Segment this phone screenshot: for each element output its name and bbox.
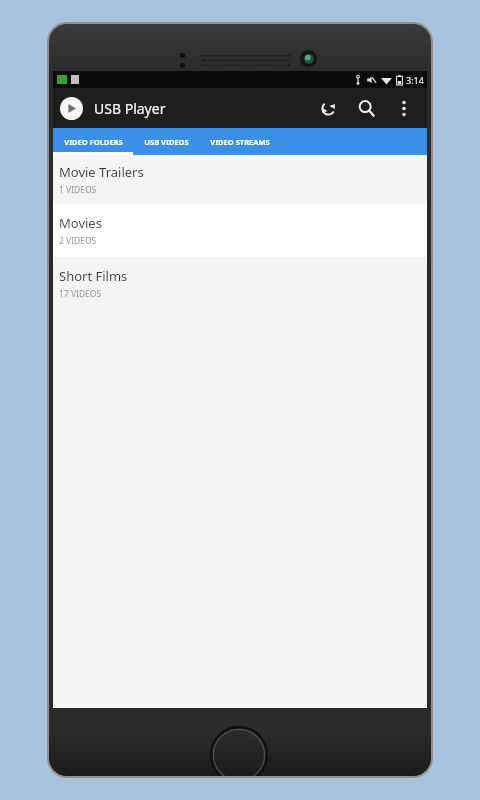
staticText: Short Films [59,267,128,285]
button[interactable]: Movie Trailers [53,155,427,204]
staticText: Movie Trailers [59,163,144,181]
button[interactable]: Refresh [309,88,347,128]
staticText: 3:14 [406,74,424,86]
staticText: USB VIDEOS [144,137,189,147]
button[interactable]: Movies [53,204,427,257]
staticText: VIDEO STREAMS [210,137,270,147]
staticText: 2 VIDEOS [59,235,97,247]
staticText: 17 VIDEOS [59,288,102,300]
button[interactable]: VIDEO FOLDERS [53,128,133,155]
button[interactable]: More options [385,88,423,128]
button[interactable]: USB Player logo [60,97,83,120]
button[interactable]: Short Films [53,257,427,310]
staticText: 1 VIDEOS [59,184,97,196]
staticText: Movies [59,214,102,232]
staticText: USB Player [94,99,166,118]
button[interactable]: USB VIDEOS [133,128,199,155]
button[interactable]: Search [347,88,385,128]
button[interactable]: VIDEO STREAMS [199,128,281,155]
staticText: VIDEO FOLDERS [64,137,123,147]
